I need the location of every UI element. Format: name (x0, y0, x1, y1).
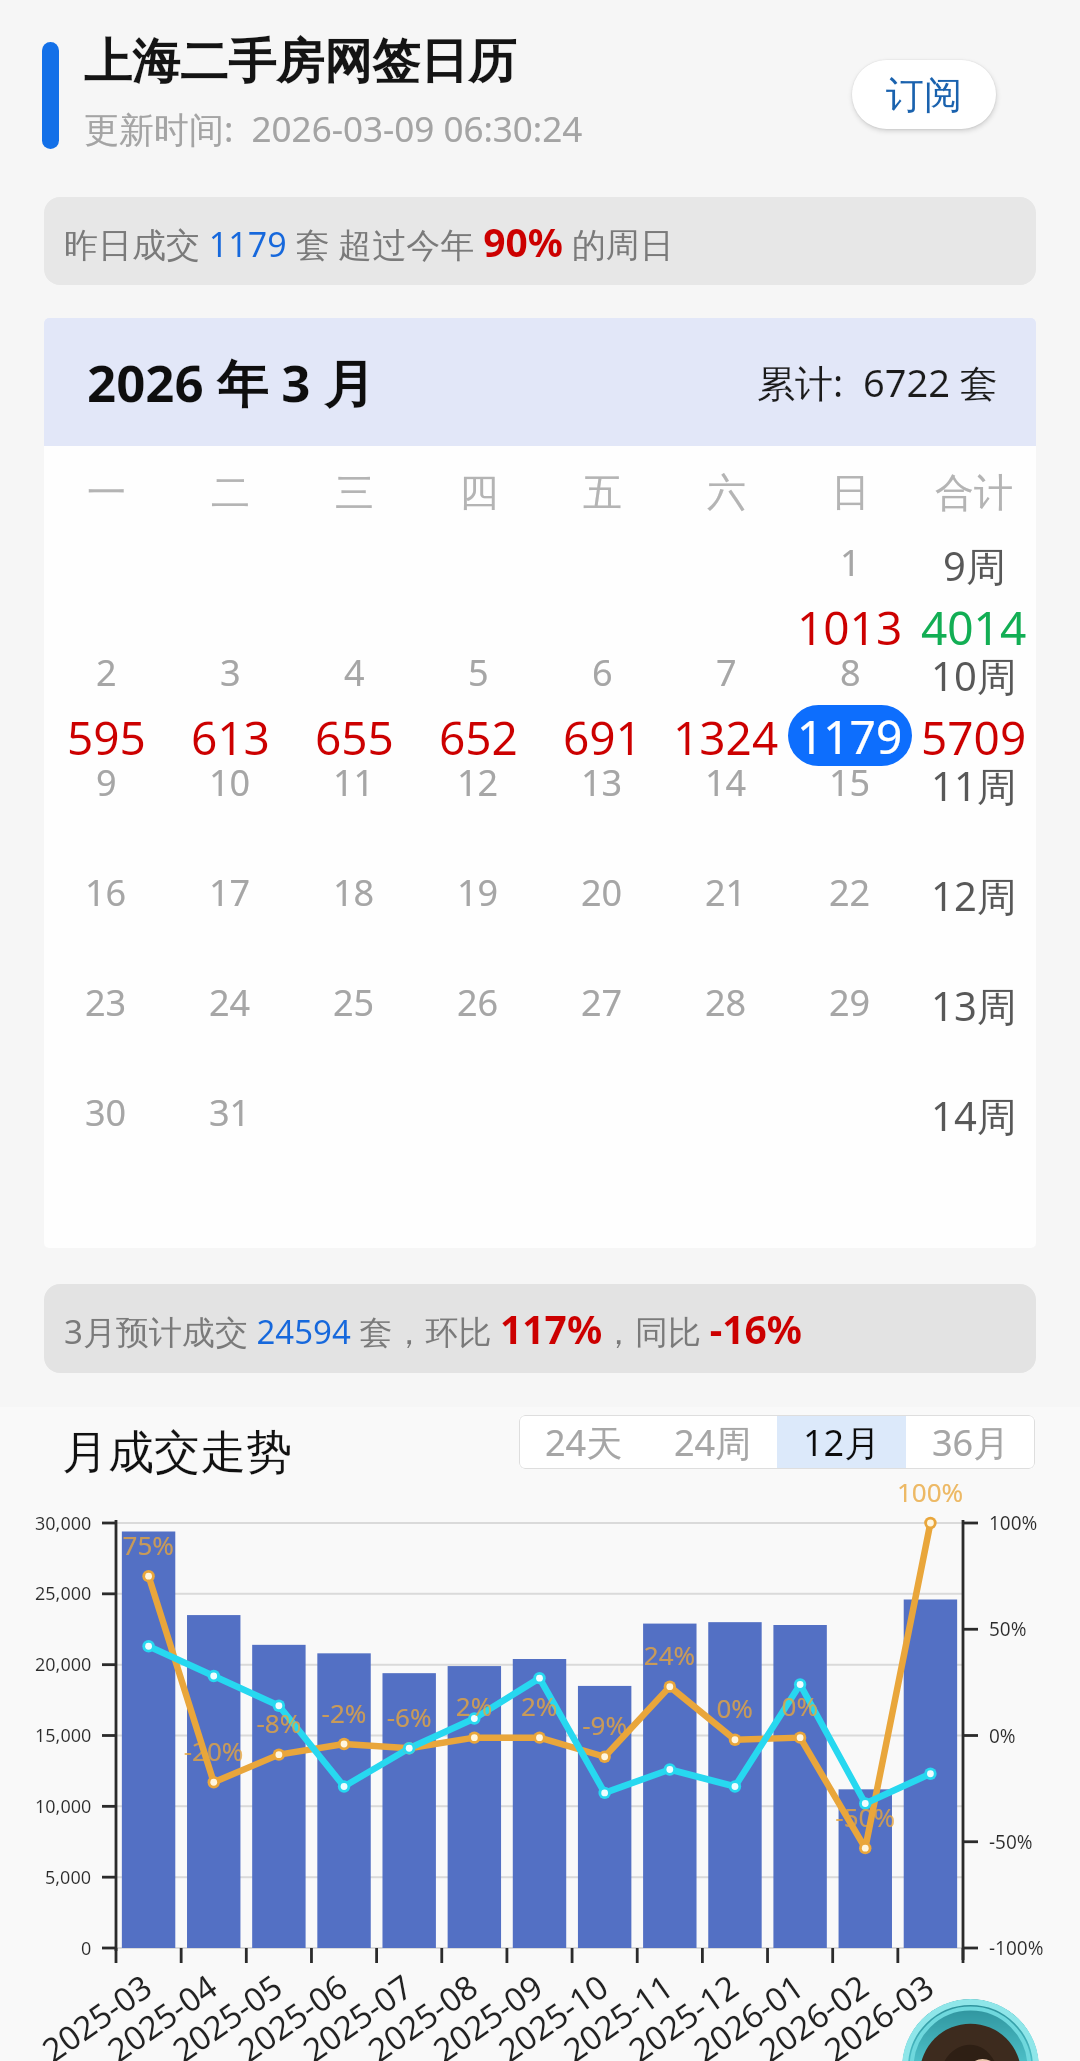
staticText: 累计: 6722 套 (757, 356, 998, 408)
staticText: 更新时间: 2026-03-09 06:30:24 (84, 105, 583, 153)
staticText: 3 (220, 648, 241, 697)
button[interactable]: 10 (168, 758, 292, 868)
button[interactable]: 19 (416, 868, 540, 978)
staticText: 6 (592, 648, 613, 697)
staticText: 一 (87, 468, 126, 517)
staticText: 六 (707, 468, 746, 517)
staticText: 21 (705, 868, 747, 917)
staticText: 23 (85, 978, 127, 1027)
staticText: 13 (581, 758, 623, 807)
button[interactable]: 21 (664, 868, 788, 978)
staticText: 1179 (797, 705, 903, 766)
staticText: 15 (829, 758, 871, 807)
button[interactable]: 1 (788, 538, 912, 648)
button[interactable]: 13 (540, 758, 664, 868)
staticText: 9 (96, 758, 117, 807)
staticText: 17 (209, 868, 251, 917)
staticText: 10 (209, 758, 251, 807)
button[interactable]: 22 (788, 868, 912, 978)
staticText: 上海二手房网签日历 (84, 32, 516, 92)
button[interactable]: 订阅 (852, 60, 996, 129)
staticText: 25 (333, 978, 375, 1027)
button[interactable]: 24周 (648, 1415, 777, 1469)
staticText: 8 (840, 648, 861, 697)
button[interactable]: 16 (44, 868, 168, 978)
staticText: 3月预计成交 24594 套，环比 117%，同比 -16% (64, 1302, 802, 1355)
button[interactable]: 27 (540, 978, 664, 1088)
button[interactable]: 3 (168, 648, 292, 758)
staticText: 2 (96, 648, 117, 697)
button[interactable]: 24天 (519, 1415, 648, 1469)
staticText: 30 (85, 1088, 127, 1137)
staticText: 9周 (943, 538, 1006, 593)
button[interactable]: 23 (44, 978, 168, 1088)
button[interactable]: 9 (44, 758, 168, 868)
staticText: 四 (459, 468, 498, 517)
button[interactable]: 24 (168, 978, 292, 1088)
button[interactable]: 12 (416, 758, 540, 868)
staticText: 昨日成交 1179 套 超过今年 90% 的周日 (64, 215, 674, 268)
staticText: 19 (457, 868, 499, 917)
staticText: 订阅 (886, 71, 962, 119)
button[interactable]: 26 (416, 978, 540, 1088)
staticText: 24天 (545, 1418, 623, 1467)
button[interactable]: 25 (292, 978, 416, 1088)
button[interactable]: 18 (292, 868, 416, 978)
staticText: 1 (840, 538, 861, 587)
staticText: 18 (333, 868, 375, 917)
staticText: 691 (563, 706, 642, 769)
staticText: 613 (191, 706, 270, 769)
button[interactable]: 8 (788, 648, 912, 758)
staticText: 五 (583, 468, 622, 517)
staticText: 26 (457, 978, 499, 1027)
staticText: 11 (333, 758, 375, 807)
staticText: 4014 (921, 596, 1027, 659)
button[interactable]: Author avatar (902, 1999, 1039, 2061)
staticText: 22 (829, 868, 871, 917)
button[interactable]: 11 (292, 758, 416, 868)
button[interactable]: 20 (540, 868, 664, 978)
button[interactable]: 15 (788, 758, 912, 868)
staticText: 36月 (932, 1418, 1010, 1467)
staticText: 月成交走势 (62, 1424, 292, 1482)
button[interactable]: 5 (416, 648, 540, 758)
button[interactable]: 12月 (777, 1415, 906, 1469)
staticText: 2026 年 3 月 (87, 347, 375, 417)
button[interactable]: 4 (292, 648, 416, 758)
staticText: 16 (85, 868, 127, 917)
staticText: 12月 (803, 1418, 881, 1467)
button[interactable]: 6 (540, 648, 664, 758)
staticText: 652 (439, 706, 518, 769)
staticText: 12周 (931, 868, 1017, 923)
button[interactable]: 28 (664, 978, 788, 1088)
staticText: 1013 (797, 596, 903, 659)
staticText: 14 (705, 758, 747, 807)
staticText: 合计 (935, 468, 1013, 517)
button[interactable]: 7 (664, 648, 788, 758)
button[interactable]: 17 (168, 868, 292, 978)
button[interactable]: 29 (788, 978, 912, 1088)
button[interactable]: 30 (44, 1088, 168, 1198)
button[interactable]: 31 (168, 1088, 292, 1198)
staticText: 31 (209, 1088, 251, 1137)
staticText: 11周 (931, 758, 1017, 813)
button[interactable]: 14 (664, 758, 788, 868)
staticText: 7 (716, 648, 737, 697)
staticText: 1324 (673, 706, 779, 769)
button[interactable]: 36月 (906, 1415, 1035, 1469)
staticText: 日 (831, 468, 870, 517)
staticText: 5709 (921, 706, 1027, 769)
staticText: 13周 (931, 978, 1017, 1033)
button[interactable]: 2 (44, 648, 168, 758)
